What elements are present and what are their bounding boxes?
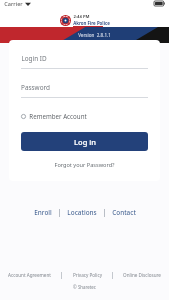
staticText: Login ID — [21, 54, 47, 63]
button[interactable]: Login ID — [21, 54, 148, 69]
button[interactable]: Online Disclosure — [121, 270, 163, 280]
staticText: Carrier — [4, 0, 23, 7]
button[interactable]: Password — [21, 83, 148, 98]
staticText: Akron Fire Police — [73, 20, 110, 26]
staticText: Locations — [67, 208, 97, 217]
staticText: © Sharetec — [73, 284, 96, 290]
staticText: Log in — [74, 137, 96, 147]
button[interactable]: Locations — [60, 205, 104, 220]
button[interactable]: Contact — [105, 205, 143, 220]
staticText: 2:44 PM — [73, 14, 90, 20]
staticText: Forgot your Password? — [54, 161, 115, 169]
staticText: Password — [21, 83, 50, 92]
button[interactable]: Forgot your Password? — [21, 160, 148, 170]
button[interactable]: Account Agreement — [6, 270, 53, 280]
staticText: Online Disclosure — [123, 272, 161, 278]
button[interactable]: Enroll — [27, 205, 59, 220]
button[interactable]: Privacy Policy — [71, 270, 104, 280]
button[interactable]: Remember Account — [21, 110, 87, 122]
staticText: Enroll — [34, 208, 52, 217]
staticText: Remember Account — [29, 112, 87, 120]
staticText: Account Agreement — [8, 272, 51, 278]
button[interactable]: Log in — [21, 132, 148, 151]
staticText: Contact — [112, 208, 136, 217]
staticText: Privacy Policy — [73, 272, 102, 278]
staticText: Version 2.8.1.1 — [78, 32, 111, 38]
